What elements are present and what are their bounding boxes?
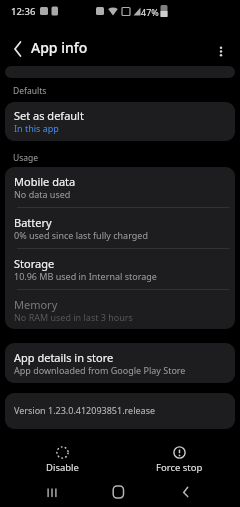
staticText: App downloaded from Google Play Store: [14, 364, 186, 376]
button[interactable]: App details in store: [5, 343, 235, 383]
staticText: Storage: [14, 256, 55, 271]
staticText: No data used: [14, 188, 71, 200]
button[interactable]: [172, 477, 200, 507]
button[interactable]: Storage: [5, 249, 235, 289]
staticText: Mobile data: [14, 174, 76, 189]
staticText: Memory: [14, 297, 58, 312]
button[interactable]: [38, 477, 66, 507]
button[interactable]: Set as default: [5, 102, 235, 141]
button[interactable]: Memory: [5, 290, 235, 329]
button[interactable]: Mobile data: [5, 167, 235, 207]
staticText: Force stop: [156, 461, 203, 474]
staticText: Usage: [13, 152, 39, 164]
staticText: App info: [31, 38, 88, 57]
staticText: Version 1.23.0.412093851.release: [14, 404, 156, 416]
button[interactable]: [209, 40, 233, 64]
staticText: No RAM used in last 3 hours: [14, 311, 133, 323]
staticText: 0% used since last fully charged: [14, 229, 148, 241]
button[interactable]: Battery: [5, 208, 235, 248]
staticText: Set as default: [14, 108, 84, 123]
staticText: 10.96 MB used in Internal storage: [14, 270, 157, 282]
staticText: Disable: [46, 461, 79, 474]
staticText: App details in store: [14, 350, 114, 365]
button[interactable]: [6, 38, 28, 60]
staticText: 12:36: [11, 5, 36, 18]
staticText: In this app: [14, 122, 59, 134]
staticText: Battery: [14, 215, 52, 230]
staticText: Defaults: [13, 85, 47, 97]
button[interactable]: Force stop: [138, 444, 220, 474]
button[interactable]: [104, 477, 132, 507]
staticText: 47%: [141, 6, 159, 18]
button[interactable]: Disable: [21, 444, 103, 474]
